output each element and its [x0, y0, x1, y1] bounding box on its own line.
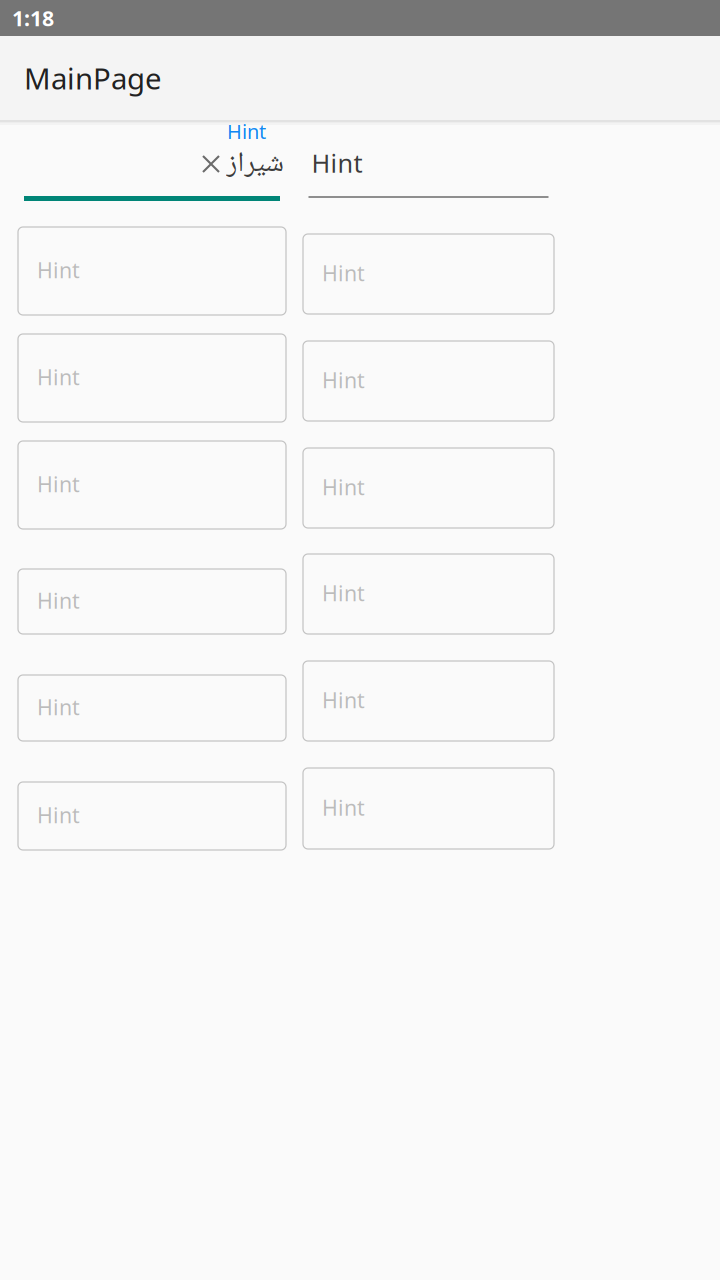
- button[interactable]: Hint: [18, 334, 286, 422]
- staticText: MainPage: [24, 58, 162, 97]
- staticText: Hint: [322, 793, 365, 822]
- button[interactable]: Hint: [24, 123, 281, 203]
- button[interactable]: Hint: [308, 153, 547, 203]
- button[interactable]: Hint: [303, 661, 554, 741]
- button[interactable]: Hint: [303, 554, 554, 634]
- button[interactable]: Hint: [18, 782, 286, 850]
- button[interactable]: Hint: [18, 569, 286, 634]
- staticText: Hint: [322, 473, 365, 501]
- staticText: Hint: [37, 586, 80, 615]
- button[interactable]: Hint: [303, 341, 554, 421]
- staticText: Hint: [322, 686, 365, 714]
- button[interactable]: Hint: [18, 227, 286, 315]
- staticText: Hint: [37, 693, 80, 721]
- button[interactable]: Clear text: [202, 155, 220, 173]
- staticText: 1:18: [12, 4, 54, 32]
- staticText: Hint: [311, 146, 362, 180]
- staticText: Hint: [37, 801, 80, 829]
- staticText: Hint: [37, 470, 80, 498]
- button[interactable]: Hint: [18, 441, 286, 529]
- button[interactable]: Hint: [303, 768, 554, 849]
- button[interactable]: Hint: [303, 234, 554, 314]
- staticText: Hint: [322, 259, 365, 287]
- staticText: شیراز: [226, 141, 283, 189]
- staticText: Hint: [322, 366, 365, 394]
- staticText: Hint: [227, 118, 266, 145]
- staticText: Hint: [37, 363, 80, 391]
- staticText: Hint: [37, 256, 80, 284]
- staticText: Hint: [322, 579, 365, 607]
- button[interactable]: Hint: [303, 448, 554, 528]
- button[interactable]: Hint: [18, 675, 286, 741]
